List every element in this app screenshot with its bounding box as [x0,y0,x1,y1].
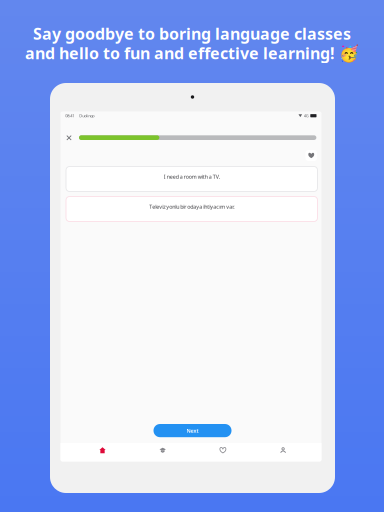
staticText: Duolingo [79,113,94,118]
button[interactable]: I need a room with a TV. [66,166,317,191]
button[interactable]: Next [153,424,231,437]
staticText: Next [186,427,198,434]
staticText: and hello to fun and effective learning!… [25,42,359,64]
button[interactable]: Profile [253,441,313,459]
button[interactable]: Televizyonlu bir odaya ihtiyacım var. [66,196,317,221]
button[interactable]: Hearts [305,150,317,161]
staticText: Say goodbye to boring language classes [33,23,351,44]
button[interactable]: Home [72,441,133,459]
button[interactable]: Saved [193,441,253,459]
staticText: 08:41 [65,113,74,118]
staticText: I need a room with a TV. [164,173,220,180]
staticText: Televizyonlu bir odaya ihtiyacım var. [149,203,234,210]
staticText: 4G [304,113,309,118]
button[interactable]: Close lesson [63,132,74,143]
button[interactable]: Lessons [133,441,193,459]
